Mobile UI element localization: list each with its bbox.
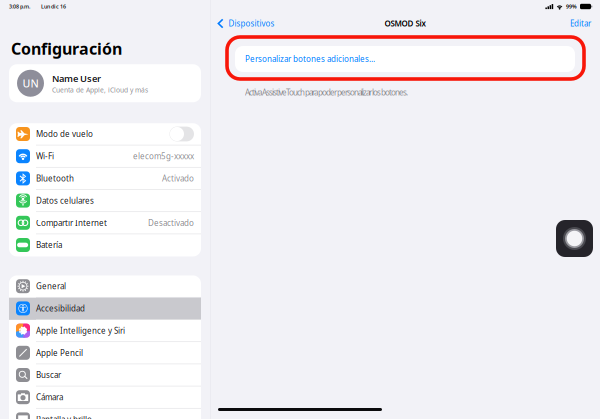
staticText: Lun dic 16 xyxy=(41,3,66,10)
staticText: Activado xyxy=(162,173,194,184)
staticText: Name User xyxy=(52,72,101,84)
staticText: Configuración xyxy=(11,38,122,59)
staticText: Activa AssistiveTouch para poder persona… xyxy=(245,87,408,98)
staticText: Cuenta de Apple, iCloud y más xyxy=(52,85,148,94)
button[interactable]: Wi-Fi xyxy=(9,145,201,168)
button[interactable]: Apple Intelligence y Siri xyxy=(9,320,201,342)
staticText: Pantalla y brillo xyxy=(36,414,92,419)
button[interactable]: Dispositivos xyxy=(217,18,274,29)
staticText: Modo de vuelo xyxy=(36,129,93,139)
staticText: General xyxy=(36,281,66,291)
staticText: Datos celulares xyxy=(36,195,94,206)
button[interactable]: Buscar xyxy=(9,364,201,386)
button[interactable]: General xyxy=(9,275,201,298)
button[interactable]: Datos celulares xyxy=(9,190,201,212)
button[interactable]: Bluetooth xyxy=(9,168,201,190)
button[interactable]: Modo de vuelo xyxy=(9,123,201,145)
staticText: Apple Intelligence y Siri xyxy=(36,325,125,336)
staticText: Cámara xyxy=(36,392,63,402)
staticText: Batería xyxy=(36,240,62,250)
staticText: elecom5g-xxxxx xyxy=(133,151,194,161)
staticText: Compartir Internet xyxy=(36,217,107,228)
staticText: Editar xyxy=(570,18,591,29)
staticText: Wi-Fi xyxy=(36,151,54,161)
staticText: Bluetooth xyxy=(36,173,74,184)
button[interactable]: Cámara xyxy=(9,386,201,409)
staticText: Desactivado xyxy=(148,217,194,228)
staticText: Dispositivos xyxy=(228,18,274,29)
staticText: Accesibilidad xyxy=(36,303,85,314)
staticText: Personalizar botones adicionales... xyxy=(245,54,375,64)
button[interactable]: Compartir Internet xyxy=(9,212,201,234)
button[interactable]: Editar xyxy=(570,18,591,29)
button[interactable]: Batería xyxy=(9,234,201,256)
staticText: Buscar xyxy=(36,370,61,380)
button[interactable]: Apple Pencil xyxy=(9,342,201,364)
staticText: 3:08 p.m. xyxy=(9,3,30,10)
button[interactable]: Accesibilidad xyxy=(9,298,201,320)
button[interactable]: UN xyxy=(9,64,201,102)
staticText: Apple Pencil xyxy=(36,347,83,358)
button[interactable]: Pantalla y brillo xyxy=(9,409,201,419)
staticText: 99% xyxy=(566,3,577,10)
button[interactable]: AssistiveTouch xyxy=(556,220,593,257)
staticText: OSMOD Six xyxy=(384,18,425,29)
button[interactable]: Personalizar botones adicionales... xyxy=(235,46,575,72)
staticText: UN xyxy=(22,76,38,90)
